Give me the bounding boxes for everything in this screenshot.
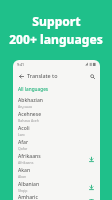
button[interactable]: Afrikaans bbox=[13, 152, 100, 166]
button[interactable]: Afar bbox=[13, 138, 100, 152]
button[interactable]: Download Afrikaans bbox=[87, 155, 96, 164]
staticText: Bahasa Aceh bbox=[18, 118, 39, 123]
staticText: Lwo bbox=[18, 132, 25, 137]
staticText: Akan bbox=[18, 167, 31, 174]
staticText: Translate to bbox=[27, 72, 58, 79]
button[interactable]: Albanian bbox=[13, 180, 100, 194]
staticText: Acehnese bbox=[18, 111, 42, 118]
staticText: Afrikaans bbox=[18, 153, 41, 160]
button[interactable]: Amharic bbox=[13, 194, 100, 200]
button[interactable]: Download Albanian bbox=[87, 183, 96, 192]
button[interactable]: Akan bbox=[13, 166, 100, 180]
staticText: Afar bbox=[18, 139, 29, 146]
button[interactable]: Acehnese bbox=[13, 110, 100, 124]
staticText: Amharic bbox=[18, 194, 38, 200]
staticText: Akan bbox=[18, 174, 27, 179]
staticText: Qafar bbox=[18, 146, 28, 151]
staticText: Abkhazian bbox=[18, 97, 43, 104]
staticText: Support bbox=[32, 13, 81, 29]
button[interactable]: Abkhazian bbox=[13, 96, 100, 110]
button[interactable]: Search bbox=[87, 71, 97, 81]
staticText: All languages bbox=[18, 86, 49, 92]
staticText: 200+ languages bbox=[9, 31, 103, 47]
staticText: Acoli bbox=[18, 125, 30, 132]
button[interactable]: Back bbox=[16, 71, 26, 81]
staticText: Afrikaans bbox=[18, 160, 34, 165]
button[interactable]: Acoli bbox=[13, 124, 100, 138]
staticText: 9:41 bbox=[17, 62, 25, 67]
staticText: Albanian bbox=[18, 181, 40, 188]
staticText: Аҧсшәа bbox=[18, 104, 33, 109]
staticText: Shqip bbox=[18, 188, 28, 193]
